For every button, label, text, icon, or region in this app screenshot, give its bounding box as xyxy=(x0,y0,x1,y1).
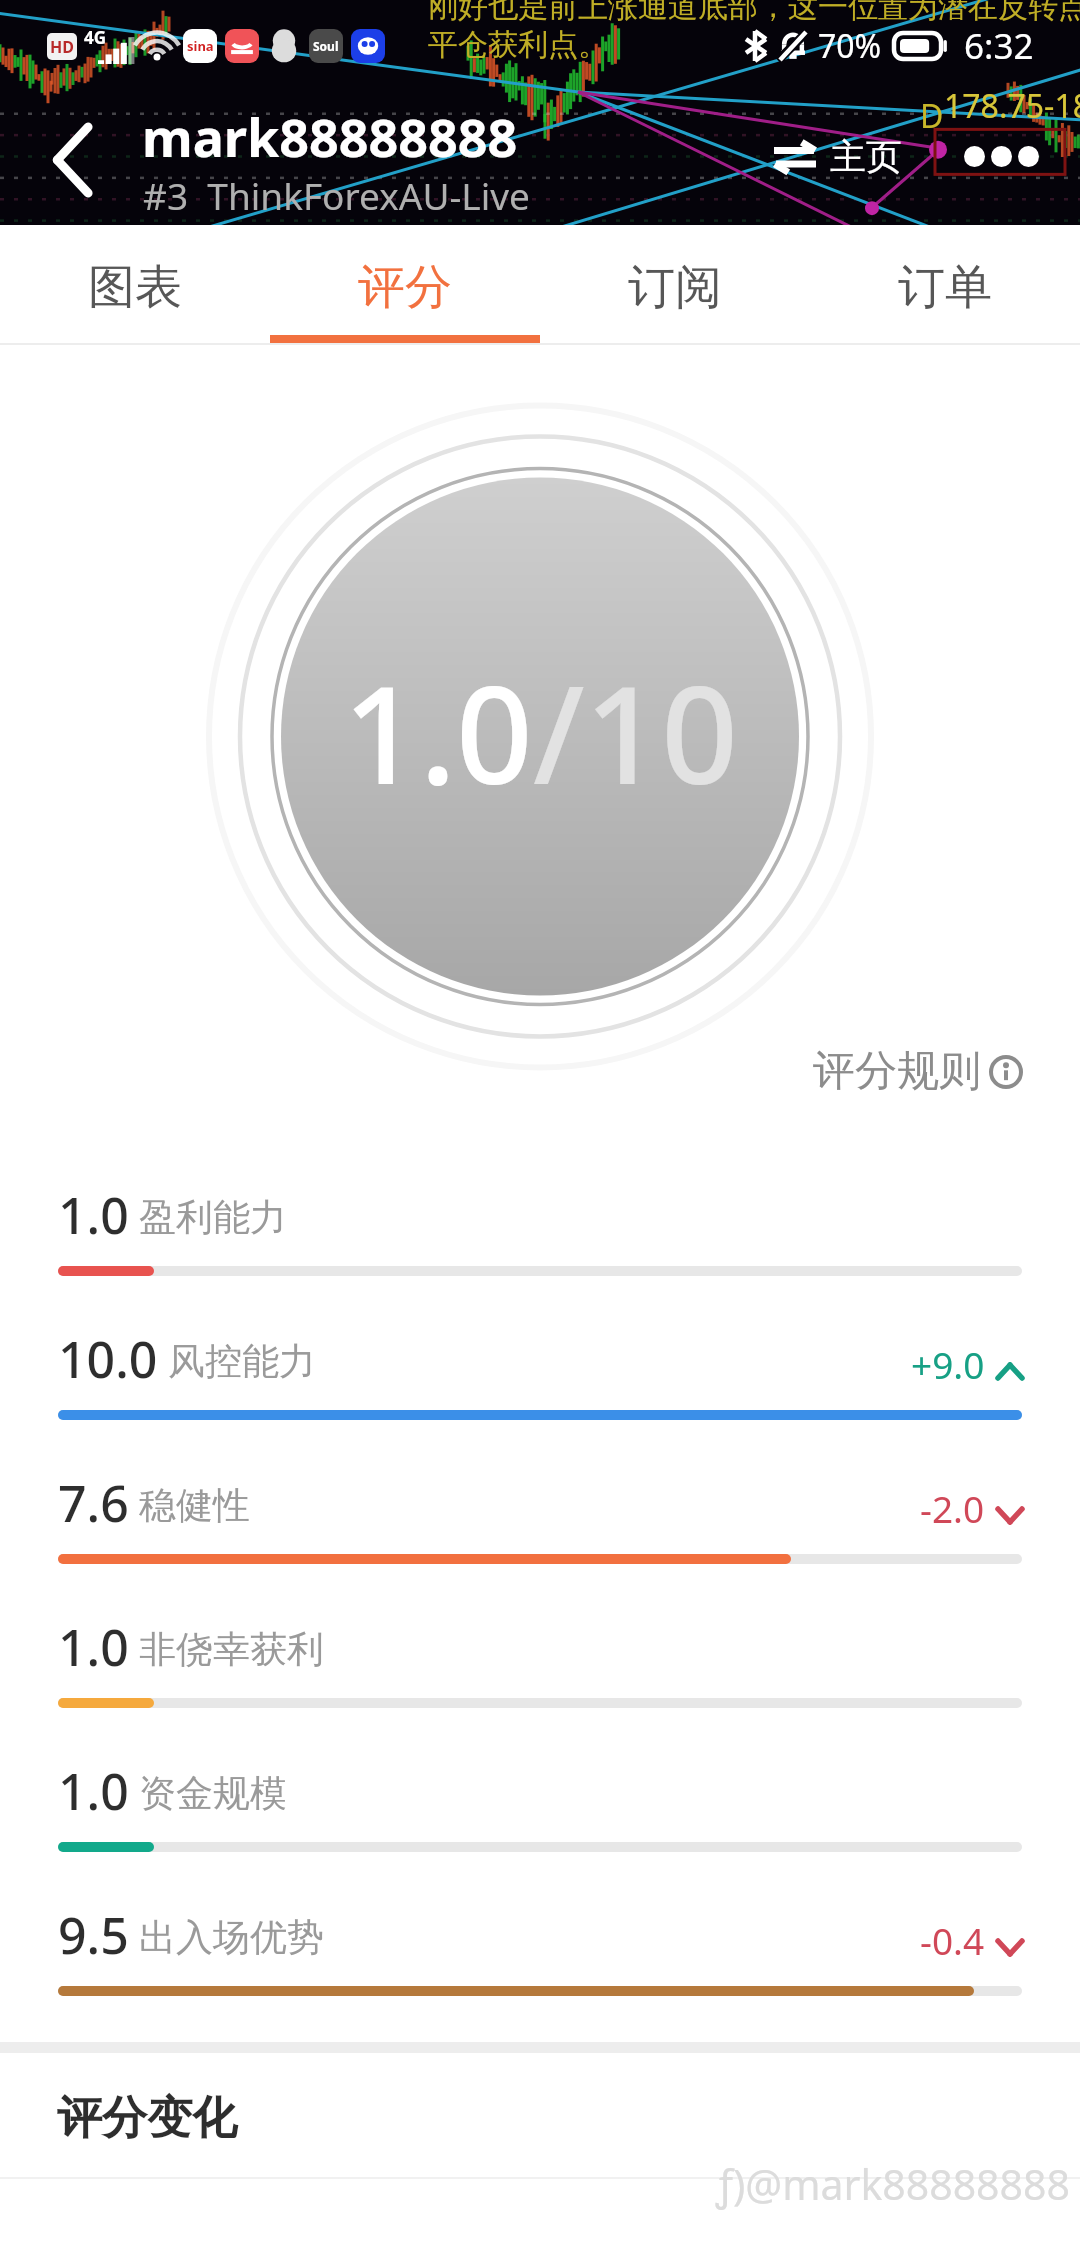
staticText: 1.0 xyxy=(58,1757,129,1825)
staticText: 4G xyxy=(84,26,107,49)
staticText: 1.0 xyxy=(343,641,533,824)
staticText: 出入场优势 xyxy=(139,1914,324,1961)
staticText: 评分变化 xyxy=(57,2090,237,2147)
staticText: 1.0 xyxy=(58,1613,129,1681)
staticText: -0.4 xyxy=(920,1915,985,1965)
staticText: sina xyxy=(187,37,214,55)
staticText: 评分 xyxy=(358,258,452,317)
button[interactable]: 10.0 xyxy=(0,1322,1080,1466)
staticText: 图表 xyxy=(88,258,182,317)
button[interactable]: 1.0 xyxy=(0,1754,1080,1898)
staticText: 6:32 xyxy=(964,22,1034,70)
staticText: -2.0 xyxy=(920,1483,985,1533)
staticText: mark88888888 xyxy=(142,101,518,172)
button[interactable]: 1.0 xyxy=(0,1610,1080,1754)
button[interactable]: 图表 xyxy=(0,225,270,345)
staticText: 70% xyxy=(818,24,882,68)
button[interactable]: 主页 xyxy=(760,120,916,193)
staticText: Soul xyxy=(313,38,339,54)
button[interactable]: 7.6 xyxy=(0,1466,1080,1610)
button[interactable]: 1.0 xyxy=(0,1178,1080,1322)
staticText: 178.75-184 xyxy=(944,84,1080,128)
button[interactable]: More options xyxy=(950,124,1053,189)
staticText: 10.0 xyxy=(58,1325,158,1393)
staticText: 平仓获利点。 xyxy=(428,26,608,64)
staticText: ƒ)@mark88888888 xyxy=(716,2156,1070,2212)
button[interactable]: 订阅 xyxy=(540,225,810,345)
button[interactable]: 9.5 xyxy=(0,1898,1080,2042)
staticText: 盈利能力 xyxy=(139,1194,287,1241)
staticText: D xyxy=(920,94,944,138)
button[interactable]: Back xyxy=(18,104,130,216)
staticText: 稳健性 xyxy=(139,1482,250,1529)
button[interactable]: 评分规则 xyxy=(813,1045,1023,1098)
staticText: 1.0 xyxy=(58,1181,129,1249)
staticText: 主页 xyxy=(830,134,902,179)
staticText: +9.0 xyxy=(911,1339,985,1389)
staticText: 评分规则 xyxy=(813,1045,981,1098)
button[interactable]: Overall score 1.0 out of 10 xyxy=(208,404,872,1068)
staticText: HD xyxy=(50,36,74,58)
button[interactable]: 订单 xyxy=(810,225,1080,345)
button[interactable]: 评分 xyxy=(270,225,540,345)
staticText: 资金规模 xyxy=(139,1770,287,1817)
staticText: #3 ThinkForexAU-Live xyxy=(143,170,530,220)
staticText: /10 xyxy=(533,641,738,824)
staticText: 订单 xyxy=(898,258,992,317)
staticText: 7.6 xyxy=(58,1469,129,1537)
staticText: 9.5 xyxy=(58,1901,129,1969)
staticText: 订阅 xyxy=(628,258,722,317)
staticText: 风控能力 xyxy=(168,1338,316,1385)
staticText: 非侥幸获利 xyxy=(139,1626,324,1673)
staticText: 刚好也是前上涨通道底部，这一位置为潜在反转点。也是不 xyxy=(428,0,1080,26)
